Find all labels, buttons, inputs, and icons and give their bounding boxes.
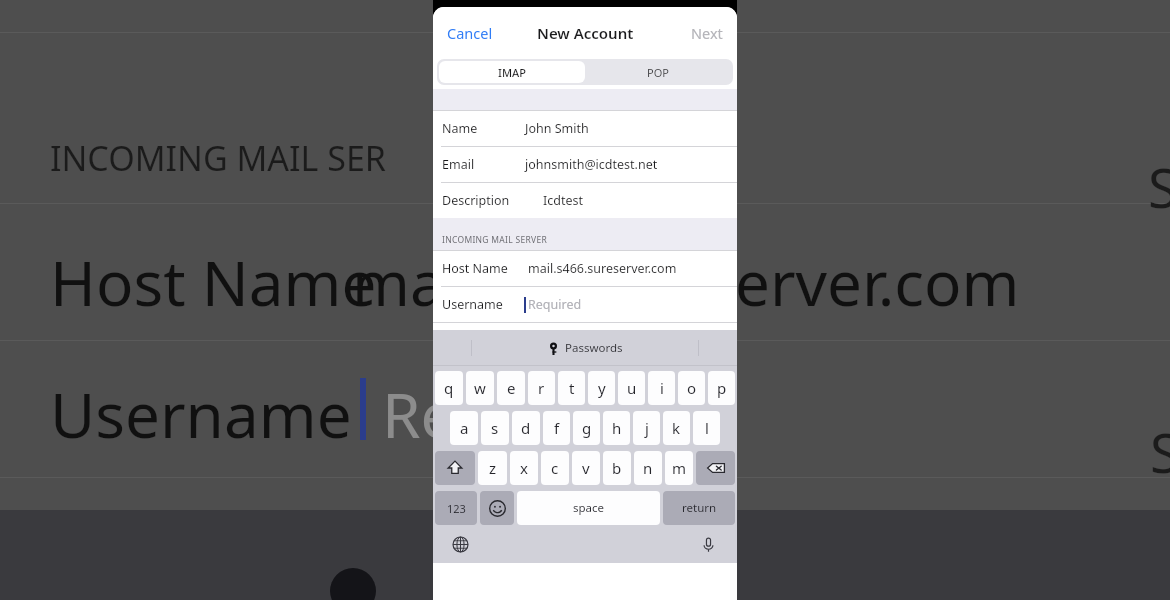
staticText: INCOMING MAIL SER	[50, 135, 386, 181]
staticText: 123	[447, 501, 466, 516]
button[interactable]: t	[558, 371, 585, 405]
button[interactable]: k	[663, 411, 690, 445]
staticText: o	[687, 378, 697, 398]
staticText: p	[717, 378, 727, 398]
button[interactable]: r	[528, 371, 555, 405]
staticText: Description	[442, 192, 510, 209]
staticText: Name	[442, 120, 478, 137]
button[interactable]: POP	[585, 61, 731, 83]
button[interactable]: IMAP	[439, 61, 585, 83]
staticText: z	[489, 458, 497, 478]
button[interactable]: Shift	[435, 451, 475, 485]
staticText: k	[672, 418, 681, 438]
button[interactable]: f	[543, 411, 570, 445]
button[interactable]: u	[618, 371, 645, 405]
button[interactable]: m	[665, 451, 693, 485]
button[interactable]: z	[478, 451, 507, 485]
staticText: johnsmith@icdtest.net	[525, 156, 658, 173]
button[interactable]: d	[512, 411, 540, 445]
button[interactable]: p	[708, 371, 735, 405]
staticText: S	[1150, 415, 1170, 489]
button[interactable]: Emoji	[480, 491, 514, 525]
staticText: x	[520, 458, 528, 478]
staticText: S	[1148, 150, 1170, 224]
button[interactable]: o	[678, 371, 705, 405]
staticText: space	[573, 500, 605, 516]
staticText: POP	[647, 65, 669, 80]
button[interactable]: a	[450, 411, 478, 445]
staticText: Required	[528, 296, 582, 313]
button[interactable]: Dictation	[697, 533, 719, 555]
staticText: q	[444, 378, 454, 398]
button[interactable]: i	[648, 371, 675, 405]
staticText: Passwords	[565, 340, 623, 356]
staticText: return	[682, 500, 717, 516]
staticText: Next	[691, 23, 723, 43]
staticText: Cancel	[447, 23, 493, 43]
button[interactable]: w	[466, 371, 494, 405]
button[interactable]: n	[634, 451, 662, 485]
staticText: a	[460, 418, 469, 438]
staticText: Host Name	[442, 260, 508, 277]
staticText: Re	[382, 372, 456, 456]
staticText: y	[598, 378, 606, 398]
staticText: n	[643, 458, 653, 478]
button[interactable]: b	[603, 451, 631, 485]
staticText: t	[569, 378, 575, 398]
button[interactable]: v	[572, 451, 600, 485]
staticText: Email	[442, 156, 475, 173]
button[interactable]: Cancel	[439, 17, 501, 49]
staticText: New Account	[537, 23, 634, 43]
button[interactable]: Description	[433, 183, 737, 218]
button[interactable]: g	[573, 411, 600, 445]
staticText: s	[491, 418, 499, 438]
button[interactable]: return	[663, 491, 735, 525]
button[interactable]: Next	[683, 17, 731, 49]
button[interactable]: q	[435, 371, 463, 405]
staticText: f	[554, 418, 560, 438]
staticText: d	[521, 418, 531, 438]
staticText: g	[582, 418, 592, 438]
staticText: h	[612, 418, 622, 438]
staticText: mail.s466.sureserver.com	[528, 260, 677, 277]
staticText: John Smith	[525, 120, 589, 137]
staticText: erver.com	[735, 240, 1020, 324]
button[interactable]: e	[497, 371, 525, 405]
staticText: ma	[352, 240, 445, 324]
staticText: Username	[442, 296, 503, 313]
button[interactable]: c	[541, 451, 569, 485]
button[interactable]: 123	[435, 491, 477, 525]
staticText: j	[645, 418, 649, 438]
staticText: u	[627, 378, 637, 398]
button[interactable]: Name	[433, 111, 737, 146]
button[interactable]: s	[481, 411, 509, 445]
staticText: Host Name	[50, 240, 377, 324]
button[interactable]: Username	[433, 287, 737, 322]
staticText: v	[582, 458, 590, 478]
staticText: i	[660, 378, 664, 398]
staticText: r	[538, 378, 545, 398]
button[interactable]: Backspace	[696, 451, 735, 485]
button[interactable]: j	[633, 411, 660, 445]
staticText: e	[507, 378, 516, 398]
button[interactable]: h	[603, 411, 630, 445]
button[interactable]: y	[588, 371, 615, 405]
staticText: m	[672, 458, 687, 478]
staticText: IMAP	[498, 65, 526, 80]
button[interactable]: x	[510, 451, 538, 485]
button[interactable]: l	[693, 411, 720, 445]
button[interactable]: space	[517, 491, 660, 525]
staticText: INCOMING MAIL SERVER	[442, 234, 548, 246]
button[interactable]: Email	[433, 147, 737, 182]
staticText: l	[705, 418, 709, 438]
button[interactable]: Host Name	[433, 251, 737, 286]
staticText: w	[474, 378, 486, 398]
staticText: b	[612, 458, 622, 478]
button[interactable]: Change keyboard	[449, 533, 471, 555]
staticText: Username	[50, 372, 352, 456]
staticText: c	[551, 458, 559, 478]
staticText: Icdtest	[543, 192, 583, 209]
